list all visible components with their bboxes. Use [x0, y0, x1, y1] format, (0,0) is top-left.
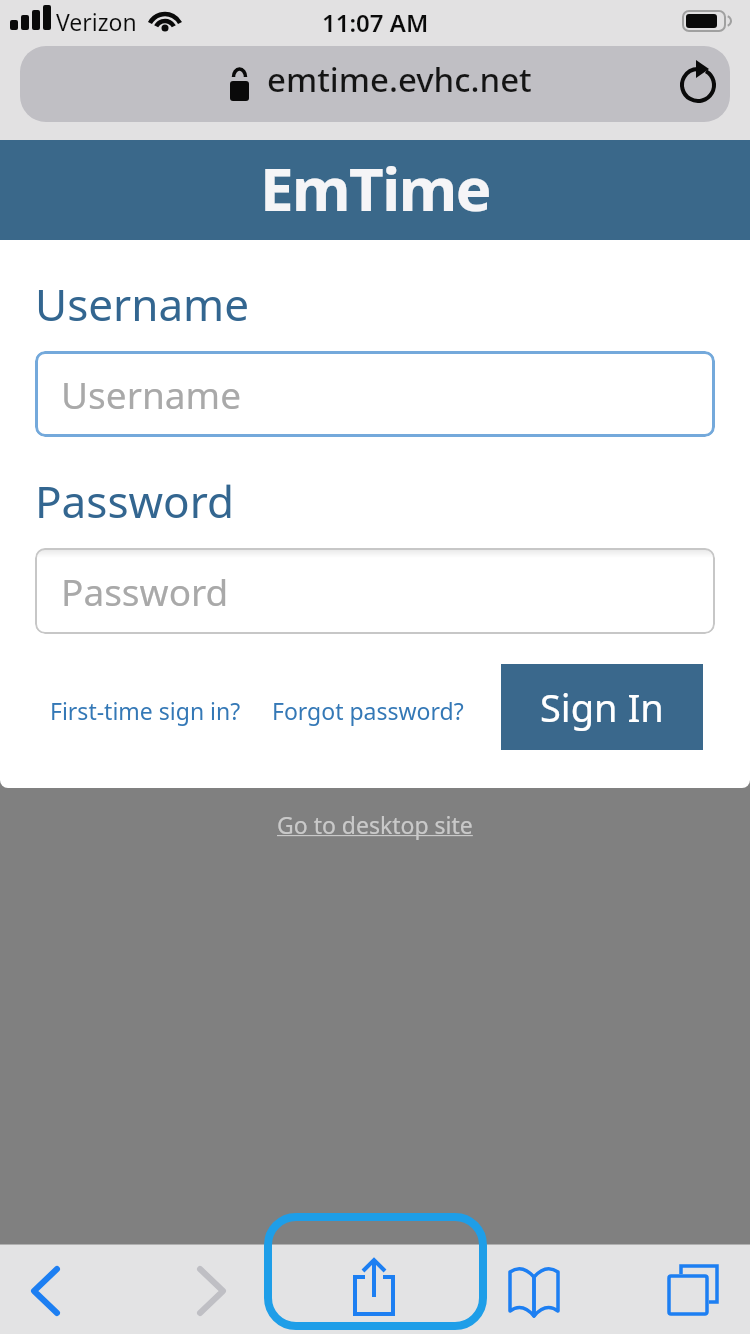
staticText: Password: [35, 471, 235, 531]
staticText: Password: [61, 566, 229, 616]
staticText: emtime.evhc.net: [267, 57, 532, 102]
staticText: Verizon: [56, 6, 137, 37]
staticText: EmTime: [260, 147, 490, 229]
staticText: 11:07 AM: [322, 6, 429, 39]
staticText: First-time sign in?: [50, 695, 241, 726]
staticText: Go to desktop site: [277, 809, 473, 840]
staticText: Sign In: [540, 681, 664, 733]
staticText: Username: [35, 274, 250, 334]
staticText: Username: [61, 369, 242, 419]
staticText: Forgot password?: [272, 695, 464, 726]
